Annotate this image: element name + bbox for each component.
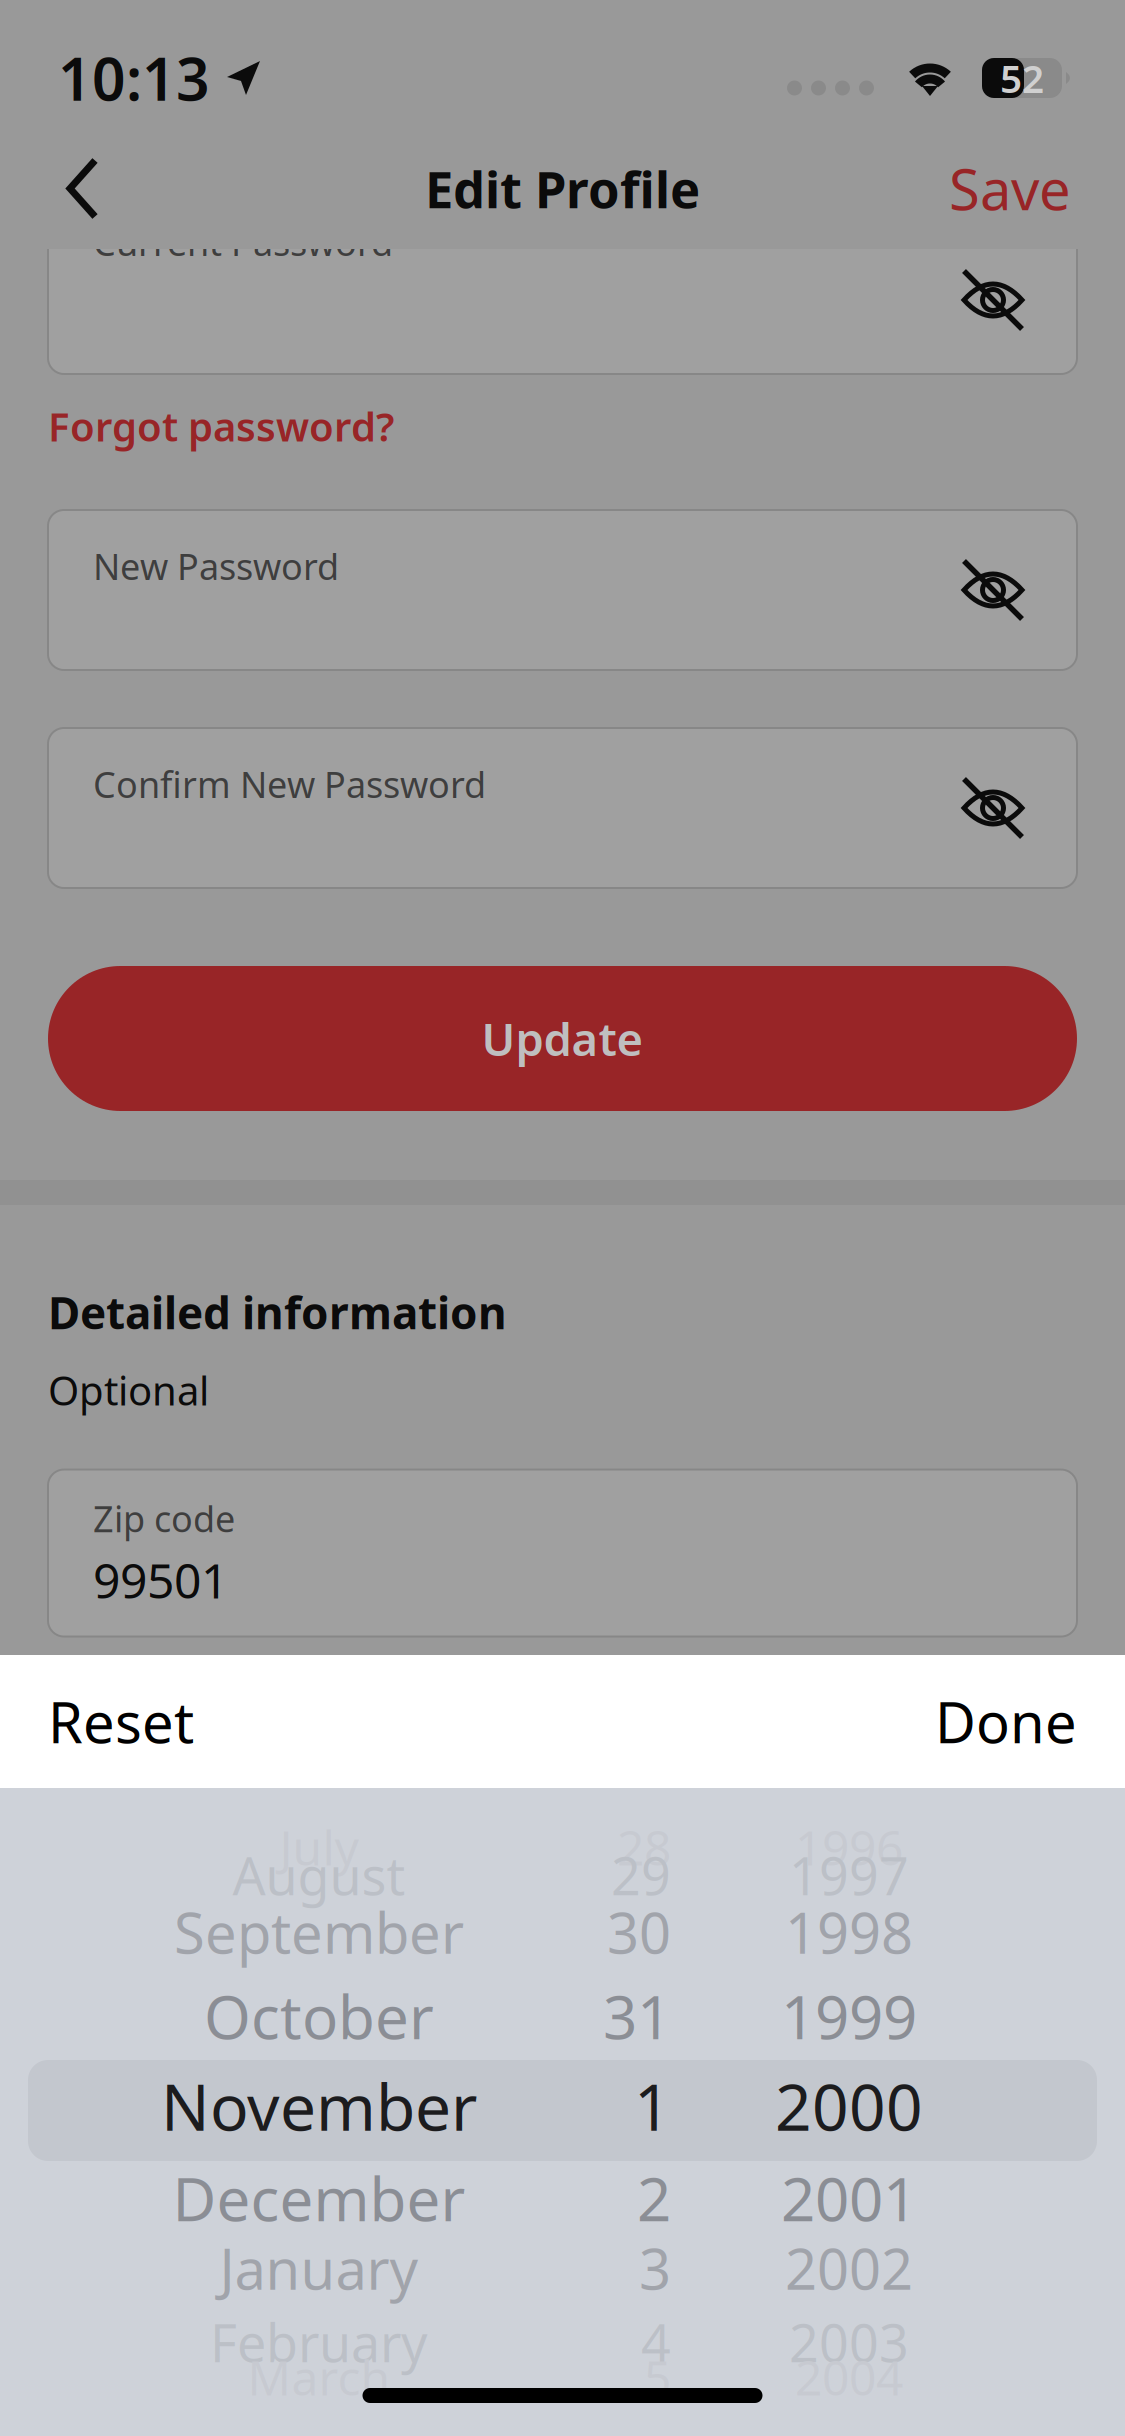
button[interactable]: New Password (48, 510, 1077, 670)
staticText: 52 (1000, 52, 1044, 104)
staticText: Edit Profile (425, 155, 700, 222)
staticText: 1998 (785, 1895, 913, 1969)
staticText: 5 (644, 2345, 671, 2409)
staticText: 1997 (789, 1840, 909, 1910)
staticText: February (210, 2307, 428, 2377)
staticText: New Password (93, 542, 339, 590)
staticText: November (161, 2063, 477, 2148)
staticText: Done (935, 1684, 1077, 1759)
staticText: January (219, 2231, 418, 2305)
staticText: 3 (639, 2231, 671, 2305)
staticText: 2001 (781, 2158, 917, 2238)
staticText: October (204, 1976, 434, 2056)
staticText: September (174, 1895, 464, 1969)
staticText: 28 (617, 1815, 671, 1879)
staticText: Forgot password? (48, 399, 394, 452)
staticText: December (172, 2158, 465, 2238)
staticText: 2002 (785, 2231, 913, 2305)
staticText: 29 (611, 1840, 671, 1910)
button[interactable]: Forgot password? (48, 396, 1077, 456)
button[interactable]: Confirm New Password (48, 728, 1077, 888)
staticText: 1 (634, 2063, 671, 2148)
staticText: Detailed information (48, 1283, 507, 1341)
staticText: Confirm New Password (93, 760, 486, 808)
staticText: 1999 (781, 1976, 917, 2056)
staticText: 31 (603, 1976, 671, 2056)
staticText: Current Password (93, 218, 393, 266)
staticText: 30 (607, 1895, 671, 1969)
staticText: August (232, 1840, 405, 1910)
staticText: Reset (48, 1684, 194, 1759)
staticText: 1996 (795, 1815, 903, 1879)
staticText: Zip code (93, 1494, 235, 1542)
staticText: July (279, 1815, 358, 1879)
staticText: 10:13 (58, 39, 210, 117)
staticText: March (247, 2345, 390, 2409)
button[interactable]: Update (48, 966, 1077, 1111)
button[interactable]: Reset (36, 1662, 206, 1781)
staticText: 2004 (795, 2345, 903, 2409)
staticText: Optional (48, 1363, 209, 1416)
staticText: 2003 (789, 2307, 909, 2377)
staticText: Update (481, 1008, 643, 1069)
button[interactable]: Back (40, 137, 126, 239)
staticText: Save (949, 151, 1071, 226)
staticText: 99501 (93, 1548, 228, 1612)
button[interactable]: Zip code (48, 1469, 1077, 1636)
staticText: 2000 (775, 2063, 923, 2148)
button[interactable]: Done (923, 1662, 1089, 1781)
staticText: 4 (641, 2307, 671, 2377)
staticText: 2 (637, 2158, 671, 2238)
button[interactable]: Save (935, 131, 1085, 246)
